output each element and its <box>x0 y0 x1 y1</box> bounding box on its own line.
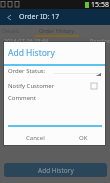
button[interactable]: Cancel <box>8 128 62 145</box>
staticText: Pending <box>90 37 110 44</box>
button[interactable]: Order History <box>35 25 79 37</box>
button[interactable]: Comment field <box>8 102 102 127</box>
staticText: Order History <box>39 27 75 34</box>
staticText: 15:58 <box>91 0 109 9</box>
staticText: Notify Customer <box>8 82 55 90</box>
button[interactable]: OK <box>62 128 105 145</box>
staticText: Cancel <box>26 134 45 142</box>
staticText: Order ID: 17 <box>19 12 60 22</box>
staticText: Comment <box>8 94 36 102</box>
staticText: Order Status: <box>8 67 46 75</box>
button[interactable]: Back <box>0 9 17 25</box>
staticText: OK <box>79 134 88 142</box>
staticText: Add History <box>8 47 55 59</box>
button[interactable]: Order status spinner <box>54 66 102 75</box>
button[interactable]: Notify Customer checkbox <box>89 81 99 91</box>
staticText: Details <box>2 27 20 34</box>
staticText: Add History <box>38 166 74 175</box>
staticText: 2014-07-26 15:44 <box>4 37 49 44</box>
button[interactable]: Add History <box>4 163 107 177</box>
